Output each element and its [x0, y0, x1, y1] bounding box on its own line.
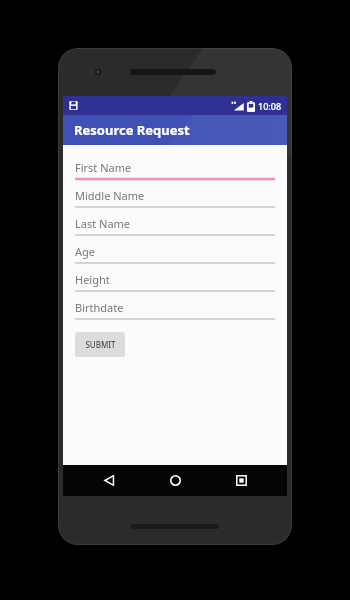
- button[interactable]: Birthdate: [75, 297, 275, 325]
- staticText: First Name: [75, 160, 132, 175]
- staticText: 10:08: [258, 100, 282, 112]
- button[interactable]: Middle Name: [75, 185, 275, 213]
- staticText: Resource Request: [74, 121, 190, 139]
- staticText: Height: [75, 272, 110, 287]
- staticText: Birthdate: [75, 300, 124, 315]
- staticText: SUBMIT: [85, 339, 116, 350]
- button[interactable]: Back: [89, 465, 129, 496]
- button[interactable]: First Name: [75, 157, 275, 185]
- button[interactable]: Age: [75, 241, 275, 269]
- button[interactable]: SUBMIT: [75, 332, 125, 357]
- button[interactable]: Home: [155, 465, 195, 496]
- staticText: Last Name: [75, 216, 131, 231]
- button[interactable]: Last Name: [75, 213, 275, 241]
- button[interactable]: Height: [75, 269, 275, 297]
- button[interactable]: Recent apps: [221, 465, 261, 496]
- staticText: Middle Name: [75, 188, 145, 203]
- staticText: Age: [75, 244, 95, 259]
